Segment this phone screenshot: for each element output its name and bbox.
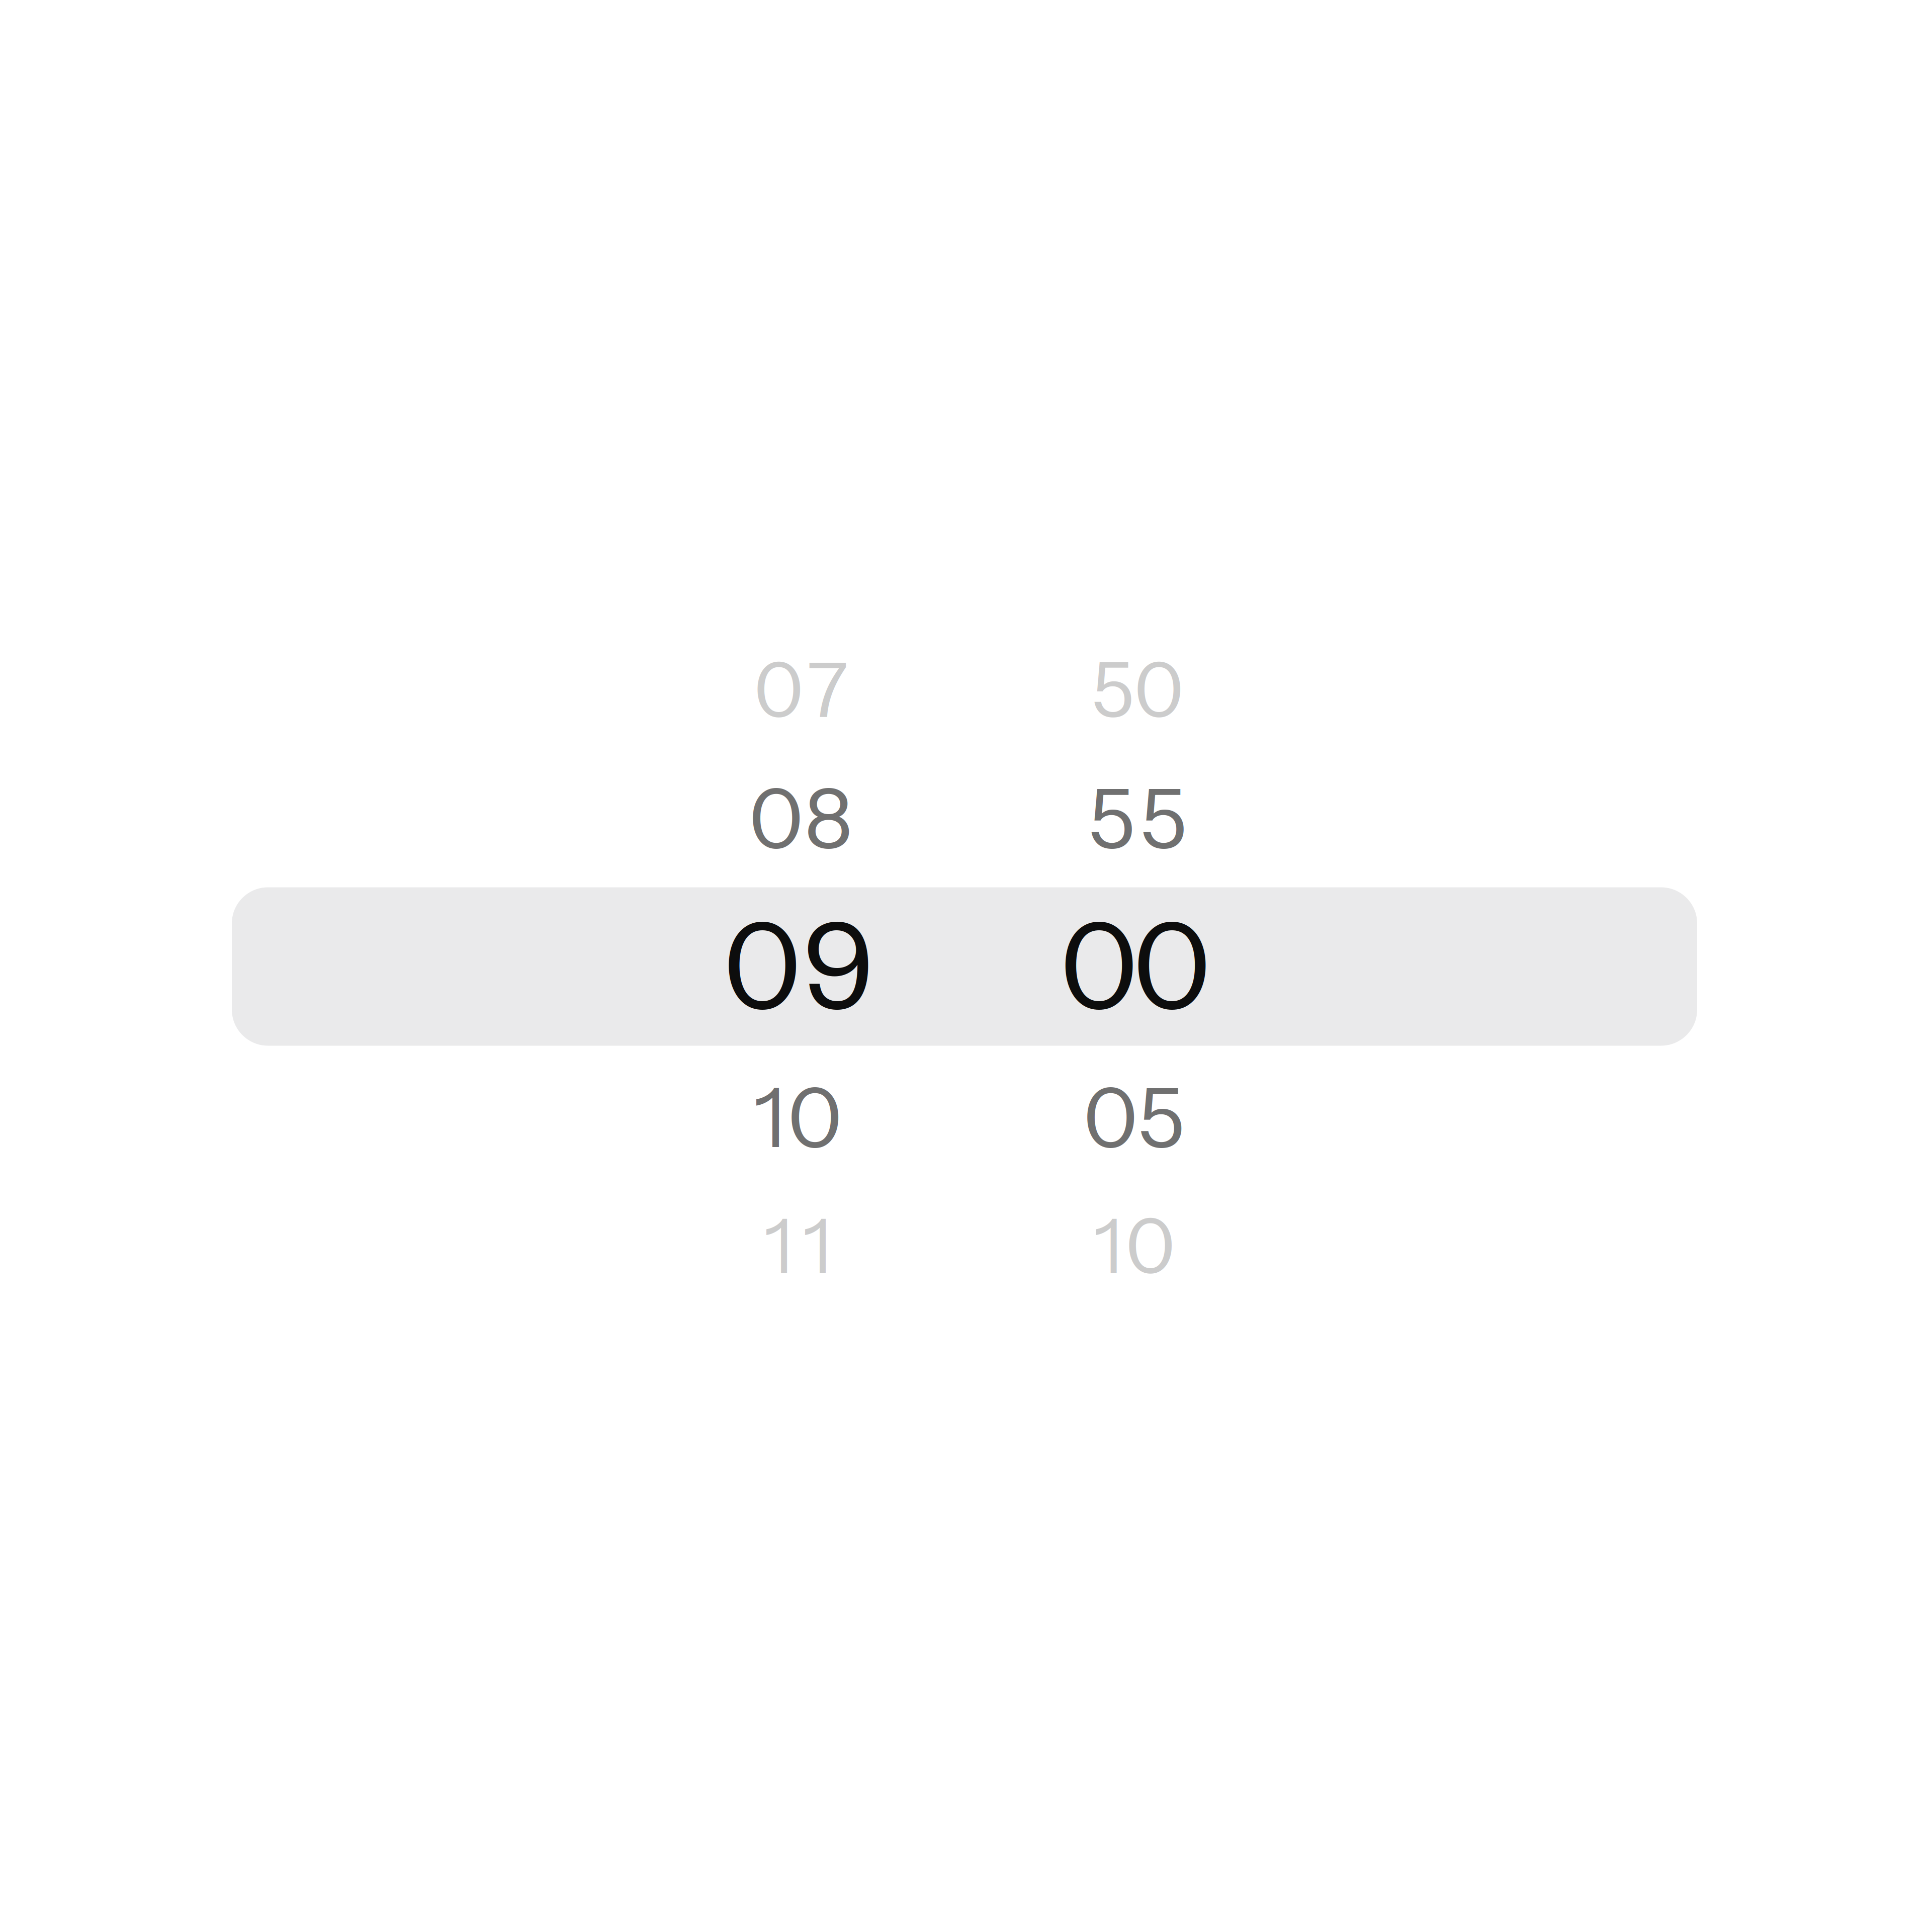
- staticText: 00: [1060, 894, 1211, 1038]
- button[interactable]: Minute: [0, 0, 1931, 1932]
- button[interactable]: Hour: [0, 0, 1931, 1932]
- staticText: 05: [1083, 1067, 1185, 1168]
- staticText: 10: [1094, 1200, 1175, 1292]
- staticText: 09: [723, 894, 875, 1038]
- staticText: 55: [1088, 768, 1187, 868]
- staticText: 08: [749, 768, 852, 868]
- staticText: 50: [1091, 644, 1184, 736]
- staticText: 07: [754, 644, 847, 736]
- staticText: 11: [764, 1200, 832, 1292]
- staticText: 10: [754, 1067, 842, 1168]
